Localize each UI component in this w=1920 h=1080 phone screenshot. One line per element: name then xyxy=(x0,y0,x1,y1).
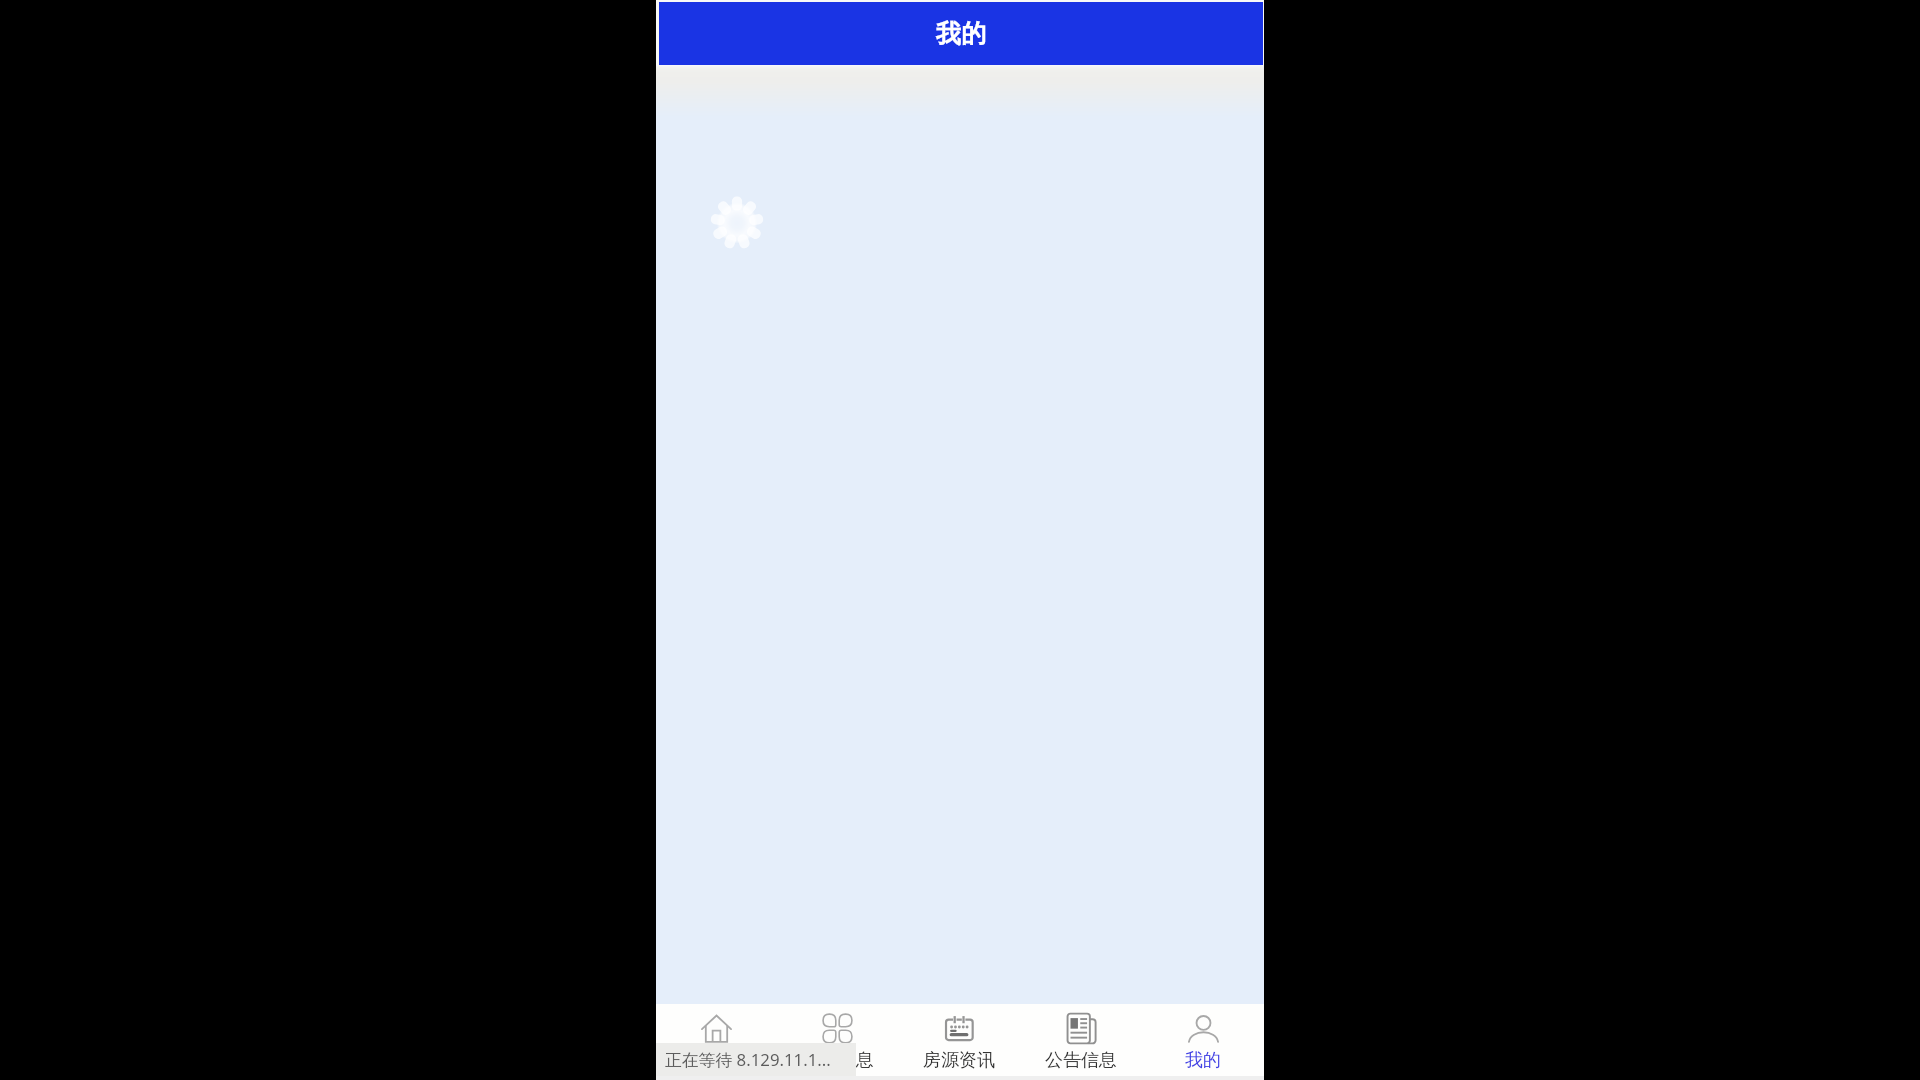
staticText: 房源资讯 xyxy=(923,1049,995,1072)
button[interactable]: 公告信息 xyxy=(1020,1004,1142,1076)
button[interactable]: 首页 xyxy=(656,1004,777,1076)
other: 办理信息 xyxy=(822,1013,853,1044)
button[interactable]: 我的 xyxy=(1142,1004,1264,1076)
staticText: 我的 xyxy=(936,18,986,49)
other: 我的 xyxy=(1188,1013,1219,1044)
staticText: 我的 xyxy=(1185,1049,1221,1072)
other: 首页 xyxy=(701,1013,732,1044)
staticText: 办理信息 xyxy=(802,1049,874,1072)
other: 公告信息 xyxy=(1066,1013,1097,1044)
staticText: 首页 xyxy=(699,1049,735,1072)
staticText: 正在等待 8.129.11.1... xyxy=(665,1048,831,1071)
other: 房源资讯 xyxy=(944,1013,975,1044)
button[interactable]: 办理信息 xyxy=(777,1004,898,1076)
button[interactable]: 房源资讯 xyxy=(898,1004,1020,1076)
staticText: 公告信息 xyxy=(1045,1049,1117,1072)
